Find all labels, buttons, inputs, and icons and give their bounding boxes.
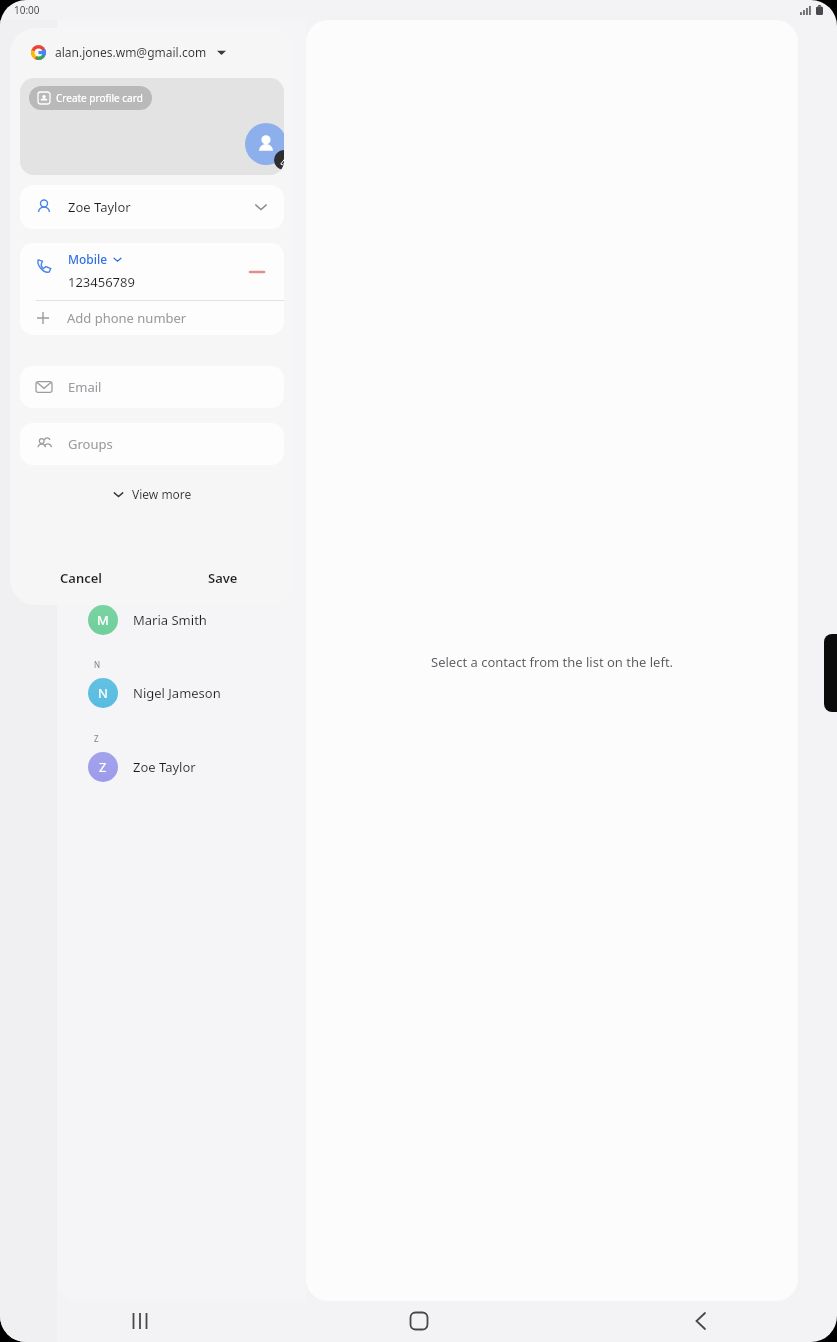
staticText: M xyxy=(97,611,109,629)
staticText: 10:00 xyxy=(14,3,40,17)
button[interactable]: N xyxy=(88,675,306,711)
button[interactable]: Email xyxy=(20,366,284,408)
staticText: Create profile card xyxy=(56,91,143,105)
staticText: Maria Smith xyxy=(133,611,207,629)
button[interactable]: Add phone number xyxy=(20,301,284,335)
staticText: Zoe Taylor xyxy=(133,758,196,776)
button[interactable]: Back xyxy=(558,1300,837,1342)
button[interactable]: Groups xyxy=(20,423,284,465)
staticText: Cancel xyxy=(60,569,103,587)
staticText: Z xyxy=(94,733,99,744)
button[interactable]: Edit photo xyxy=(274,150,284,170)
staticText: Save xyxy=(208,569,238,587)
button[interactable]: Edge panel handle xyxy=(824,634,837,712)
button[interactable]: View more xyxy=(10,478,294,510)
button[interactable]: alan.jones.wm@gmail.com xyxy=(10,28,294,76)
button[interactable]: Remove phone number xyxy=(242,257,272,287)
staticText: Add phone number xyxy=(67,309,187,327)
staticText: Zoe Taylor xyxy=(68,198,131,216)
button[interactable]: Save xyxy=(152,558,294,598)
button[interactable]: Mobile xyxy=(20,243,284,300)
staticText: Z xyxy=(99,758,107,776)
staticText: View more xyxy=(132,486,192,502)
staticText: Select a contact from the list on the le… xyxy=(431,653,674,671)
button[interactable]: Home xyxy=(279,1300,558,1342)
button[interactable]: Create profile card xyxy=(38,86,143,110)
button[interactable]: M xyxy=(88,602,306,638)
button[interactable]: Recents xyxy=(0,1300,279,1342)
staticText: Nigel Jameson xyxy=(133,684,221,702)
button[interactable]: Z xyxy=(88,749,306,785)
button[interactable]: Profile photo xyxy=(245,123,284,165)
staticText: Groups xyxy=(68,435,113,453)
staticText: alan.jones.wm@gmail.com xyxy=(55,44,207,60)
staticText: 123456789 xyxy=(68,273,135,291)
staticText: Email xyxy=(68,378,102,396)
button[interactable]: Zoe Taylor xyxy=(20,185,284,229)
staticText: N xyxy=(98,684,108,702)
button[interactable]: Cancel xyxy=(10,558,152,598)
staticText: N xyxy=(94,659,101,670)
staticText: Mobile xyxy=(68,251,108,267)
